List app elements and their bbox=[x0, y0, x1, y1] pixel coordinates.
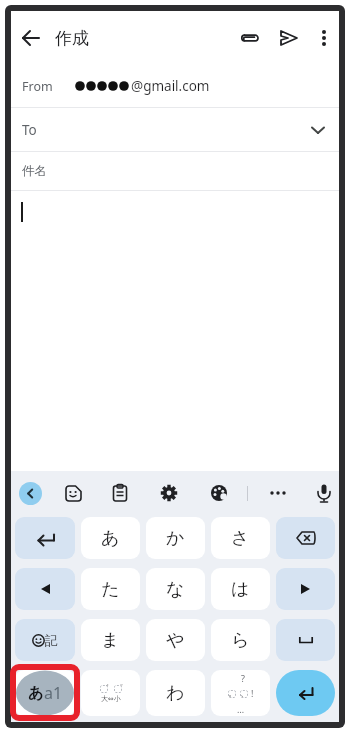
button[interactable] bbox=[309, 478, 339, 508]
button[interactable]: 件名 bbox=[11, 152, 339, 190]
button[interactable] bbox=[202, 476, 236, 510]
staticText: To bbox=[22, 121, 37, 139]
staticText: @gmail.com bbox=[131, 77, 210, 95]
button[interactable] bbox=[276, 670, 335, 716]
button[interactable] bbox=[276, 517, 335, 559]
button[interactable]: な bbox=[146, 568, 205, 610]
button[interactable]: あ bbox=[15, 670, 75, 716]
staticText: ゛ bbox=[100, 682, 110, 693]
staticText: ? bbox=[241, 672, 245, 684]
button[interactable] bbox=[19, 482, 42, 505]
staticText: や bbox=[166, 629, 185, 652]
button[interactable] bbox=[308, 16, 339, 60]
staticText: 。 bbox=[228, 687, 237, 698]
staticText: あ bbox=[28, 684, 44, 703]
button[interactable]: さ bbox=[211, 517, 270, 559]
button[interactable]: ゛ bbox=[81, 670, 140, 716]
staticText: 記 bbox=[45, 632, 58, 648]
staticText: ゜ bbox=[114, 682, 124, 693]
button[interactable]: 記 bbox=[15, 619, 75, 661]
button[interactable] bbox=[15, 568, 75, 610]
staticText: た bbox=[101, 578, 120, 601]
staticText: 大⇔小 bbox=[101, 694, 121, 703]
staticText: あ bbox=[101, 527, 120, 550]
button[interactable] bbox=[272, 16, 306, 60]
button[interactable] bbox=[233, 16, 267, 60]
button[interactable] bbox=[56, 476, 90, 510]
button[interactable]: や bbox=[146, 619, 205, 661]
staticText: ら bbox=[231, 629, 250, 652]
button[interactable]: わ bbox=[146, 670, 205, 716]
button[interactable] bbox=[11, 16, 51, 60]
button[interactable] bbox=[152, 476, 186, 510]
button[interactable]: あ bbox=[81, 517, 140, 559]
button[interactable] bbox=[261, 476, 295, 510]
button[interactable] bbox=[103, 476, 137, 510]
staticText: 、 bbox=[240, 687, 249, 698]
button[interactable]: From bbox=[11, 65, 339, 107]
staticText: ま bbox=[101, 629, 120, 652]
staticText: a1 bbox=[44, 682, 63, 704]
staticText: は bbox=[231, 578, 250, 601]
button[interactable]: To bbox=[11, 108, 339, 151]
button[interactable]: ? bbox=[211, 670, 270, 716]
button[interactable]: ら bbox=[211, 619, 270, 661]
staticText: 件名 bbox=[22, 163, 47, 179]
staticText: … bbox=[237, 703, 245, 715]
staticText: わ bbox=[166, 682, 185, 705]
button[interactable]: は bbox=[211, 568, 270, 610]
staticText: From bbox=[22, 78, 53, 95]
button[interactable] bbox=[276, 568, 335, 610]
staticText: 作成 bbox=[55, 28, 89, 49]
button[interactable]: ま bbox=[81, 619, 140, 661]
button[interactable] bbox=[15, 517, 75, 559]
staticText: か bbox=[166, 527, 185, 550]
staticText: さ bbox=[231, 527, 250, 550]
button[interactable]: か bbox=[146, 517, 205, 559]
staticText: な bbox=[166, 578, 185, 601]
button[interactable] bbox=[276, 619, 335, 661]
staticText: ! bbox=[251, 687, 254, 699]
button[interactable]: た bbox=[81, 568, 140, 610]
